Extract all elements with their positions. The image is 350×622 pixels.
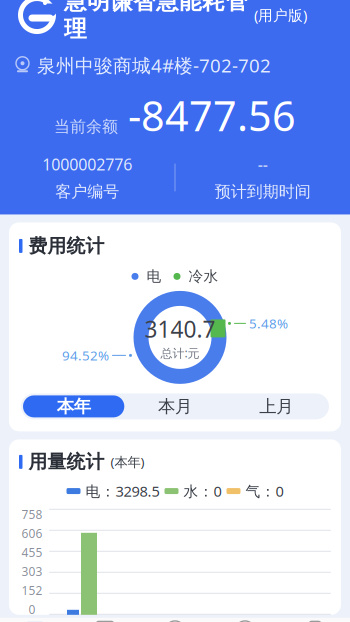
staticText: 预计到期时间 xyxy=(215,182,311,201)
staticText: 电：3298.5 xyxy=(85,481,159,501)
button[interactable]: 本月 xyxy=(124,395,226,417)
button[interactable]: 费用明细 xyxy=(140,618,210,622)
staticText: 本年 xyxy=(57,396,91,417)
staticText: 电 xyxy=(146,267,161,285)
staticText: 水：0 xyxy=(183,481,221,501)
staticText: 泉州中骏商城4#楼-702-702 xyxy=(37,53,271,78)
staticText: 总计:元 xyxy=(160,345,199,361)
button[interactable]: 月账单 xyxy=(70,618,140,622)
staticText: -- xyxy=(258,154,268,175)
staticText: 当前余额 xyxy=(54,117,118,137)
staticText: 慧明谦智慧能耗管理 xyxy=(64,0,248,43)
staticText: 3140.7 xyxy=(144,314,215,344)
staticText: 上月 xyxy=(259,396,293,417)
staticText: 用量统计 xyxy=(28,450,104,473)
button[interactable]: 首页 xyxy=(0,618,70,622)
staticText: 606 xyxy=(21,525,42,541)
button[interactable]: 我的 xyxy=(280,618,350,622)
staticText: (本年) xyxy=(110,453,144,471)
staticText: -8477.56 xyxy=(128,88,296,143)
staticText: 152 xyxy=(21,582,42,598)
staticText: 费用统计 xyxy=(28,234,104,257)
button[interactable]: 上月 xyxy=(226,395,327,417)
staticText: 94.52% xyxy=(62,346,109,364)
staticText: 5.48% xyxy=(249,314,288,332)
staticText: 本月 xyxy=(158,396,192,417)
staticText: 455 xyxy=(21,544,42,560)
staticText: 客户编号 xyxy=(55,182,119,201)
staticText: 0 xyxy=(28,601,35,617)
staticText: 303 xyxy=(21,563,42,579)
staticText: 1000002776 xyxy=(42,154,132,175)
staticText: 冷水 xyxy=(188,267,218,285)
staticText: 气：0 xyxy=(245,481,283,501)
staticText: 758 xyxy=(21,506,42,522)
staticText: (用户版) xyxy=(254,5,307,25)
button[interactable]: 缴费 xyxy=(210,618,280,622)
button[interactable]: 本年 xyxy=(23,395,124,417)
